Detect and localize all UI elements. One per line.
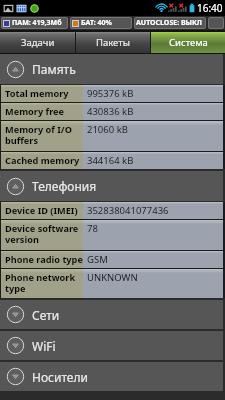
staticText: 352838041077436: [87, 204, 169, 217]
staticText: Сети: [32, 307, 60, 323]
staticText: WiFi: [32, 338, 56, 354]
staticText: GSM: [87, 253, 108, 266]
staticText: Телефония: [32, 178, 97, 194]
staticText: Phone network type: [5, 271, 76, 295]
button[interactable]: БАТ: 40%: [70, 17, 132, 29]
staticText: Cached memory: [5, 154, 80, 167]
staticText: 995376 kB: [87, 87, 134, 100]
staticText: 78: [87, 222, 98, 235]
button[interactable]: Сети: [0, 300, 223, 329]
staticText: AUTOCLOSE: ВЫКЛ: [136, 18, 202, 28]
staticText: 16:40: [197, 1, 223, 15]
staticText: UNKNOWN: [87, 271, 138, 284]
staticText: 21060 kB: [87, 123, 128, 136]
button[interactable]: Задачи: [0, 32, 75, 53]
staticText: 344164 kB: [87, 154, 134, 167]
staticText: Phone radio type: [5, 253, 83, 266]
staticText: Device software version: [5, 222, 79, 246]
button[interactable]: Телефония: [0, 171, 223, 201]
staticText: ПАМ: 419,3Мб: [12, 18, 62, 28]
staticText: Device ID (IMEI): [5, 204, 78, 217]
button[interactable]: AUTOCLOSE: ВЫКЛ: [134, 17, 206, 29]
staticText: Задачи: [21, 36, 55, 49]
staticText: Memory free: [5, 105, 65, 118]
button[interactable]: Система: [151, 32, 225, 53]
staticText: Носители: [32, 369, 88, 385]
staticText: Memory of I/O buffers: [5, 123, 72, 147]
staticText: Total memory: [5, 87, 69, 100]
button[interactable]: Пакеты: [76, 32, 150, 53]
staticText: Пакеты: [96, 36, 130, 49]
button[interactable]: ПАМ: 419,3Мб: [1, 17, 68, 29]
button[interactable]: Память: [0, 54, 223, 84]
staticText: БАТ: 40%: [81, 18, 112, 28]
button[interactable]: WiFi: [0, 331, 223, 360]
button[interactable]: Носители: [0, 362, 223, 391]
staticText: Память: [32, 61, 76, 77]
button[interactable]: [208, 17, 224, 29]
staticText: Система: [169, 36, 208, 49]
staticText: 430836 kB: [87, 105, 134, 118]
